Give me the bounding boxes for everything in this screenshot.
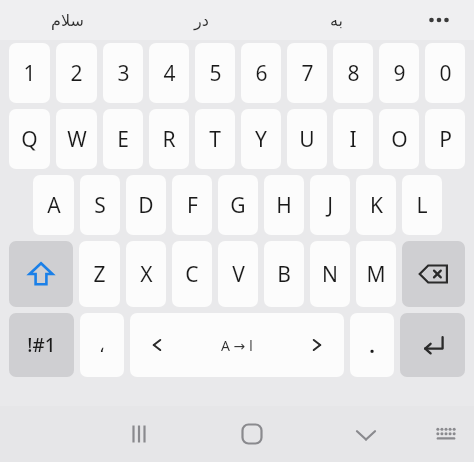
staticText: X bbox=[140, 260, 153, 289]
button[interactable]: D bbox=[126, 175, 166, 235]
staticText: C bbox=[185, 260, 199, 289]
button[interactable]: 8 bbox=[333, 43, 373, 103]
button[interactable]: Y bbox=[241, 109, 281, 169]
button[interactable]: به bbox=[269, 0, 404, 40]
button[interactable]: 5 bbox=[195, 43, 235, 103]
button[interactable]: B bbox=[264, 241, 304, 307]
staticText: A → ا bbox=[221, 336, 253, 355]
button[interactable]: More options bbox=[404, 0, 474, 40]
staticText: 8 bbox=[347, 59, 360, 88]
staticText: . bbox=[369, 332, 375, 359]
staticText: R bbox=[162, 125, 176, 154]
staticText: 3 bbox=[117, 59, 130, 88]
button[interactable]: P bbox=[425, 109, 465, 169]
button[interactable]: 7 bbox=[287, 43, 327, 103]
staticText: به bbox=[330, 11, 344, 30]
button[interactable]: 2 bbox=[56, 43, 97, 103]
staticText: N bbox=[322, 260, 338, 289]
staticText: Q bbox=[21, 125, 38, 154]
button[interactable]: Home bbox=[191, 406, 313, 462]
staticText: B bbox=[277, 260, 291, 289]
button[interactable]: Hide keyboard bbox=[313, 406, 418, 462]
staticText: G bbox=[230, 191, 246, 220]
button[interactable]: Recents bbox=[86, 406, 191, 462]
staticText: A bbox=[47, 191, 61, 220]
staticText: U bbox=[299, 125, 315, 154]
button[interactable]: M bbox=[356, 241, 396, 307]
staticText: !#1 bbox=[27, 332, 56, 358]
staticText: D bbox=[138, 191, 154, 220]
button[interactable]: 0 bbox=[425, 43, 465, 103]
staticText: J bbox=[327, 191, 333, 220]
staticText: K bbox=[370, 191, 383, 220]
button[interactable]: V bbox=[218, 241, 258, 307]
button[interactable]: Space bbox=[130, 313, 344, 377]
button[interactable]: T bbox=[195, 109, 235, 169]
button[interactable]: H bbox=[264, 175, 304, 235]
button[interactable]: U bbox=[287, 109, 327, 169]
button[interactable]: O bbox=[379, 109, 419, 169]
button[interactable]: W bbox=[56, 109, 97, 169]
button[interactable]: 1 bbox=[9, 43, 50, 103]
button[interactable]: J bbox=[310, 175, 350, 235]
button[interactable]: Shift bbox=[9, 241, 73, 307]
staticText: I bbox=[349, 125, 357, 154]
button[interactable]: 6 bbox=[241, 43, 281, 103]
staticText: 2 bbox=[70, 59, 83, 88]
button[interactable]: E bbox=[103, 109, 143, 169]
staticText: 5 bbox=[209, 59, 222, 88]
staticText: H bbox=[276, 191, 292, 220]
button[interactable]: ، bbox=[80, 313, 124, 377]
staticText: 7 bbox=[301, 59, 314, 88]
button[interactable]: F bbox=[172, 175, 212, 235]
staticText: ، bbox=[99, 335, 105, 356]
button[interactable]: سلام bbox=[0, 0, 134, 40]
button[interactable]: . bbox=[350, 313, 394, 377]
staticText: P bbox=[439, 125, 452, 154]
staticText: Z bbox=[93, 260, 106, 289]
button[interactable]: Enter bbox=[400, 313, 465, 377]
button[interactable]: A bbox=[33, 175, 74, 235]
staticText: در bbox=[194, 11, 209, 30]
staticText: 1 bbox=[23, 59, 36, 88]
staticText: Y bbox=[255, 125, 267, 154]
button[interactable]: Z bbox=[79, 241, 120, 307]
staticText: V bbox=[232, 260, 245, 289]
staticText: S bbox=[94, 191, 106, 220]
button[interactable]: N bbox=[310, 241, 350, 307]
button[interactable]: Change keyboard bbox=[418, 406, 474, 462]
staticText: سلام bbox=[51, 11, 84, 30]
button[interactable]: R bbox=[149, 109, 189, 169]
staticText: W bbox=[67, 125, 87, 154]
button[interactable]: 3 bbox=[103, 43, 143, 103]
staticText: E bbox=[117, 125, 129, 154]
button[interactable]: C bbox=[172, 241, 212, 307]
button[interactable]: !#1 bbox=[9, 313, 74, 377]
button[interactable]: G bbox=[218, 175, 258, 235]
staticText: 9 bbox=[393, 59, 406, 88]
staticText: 6 bbox=[255, 59, 268, 88]
staticText: L bbox=[416, 191, 428, 220]
staticText: 0 bbox=[439, 59, 452, 88]
button[interactable]: 9 bbox=[379, 43, 419, 103]
staticText: 4 bbox=[163, 59, 176, 88]
button[interactable]: K bbox=[356, 175, 396, 235]
button[interactable]: Q bbox=[9, 109, 50, 169]
button[interactable]: 4 bbox=[149, 43, 189, 103]
staticText: M bbox=[366, 260, 386, 289]
button[interactable]: Backspace bbox=[402, 241, 465, 307]
button[interactable]: L bbox=[402, 175, 442, 235]
staticText: F bbox=[187, 191, 198, 220]
staticText: T bbox=[209, 125, 221, 154]
button[interactable]: S bbox=[80, 175, 120, 235]
button[interactable]: I bbox=[333, 109, 373, 169]
button[interactable]: X bbox=[126, 241, 166, 307]
staticText: O bbox=[391, 125, 408, 154]
button[interactable]: در bbox=[134, 0, 269, 40]
